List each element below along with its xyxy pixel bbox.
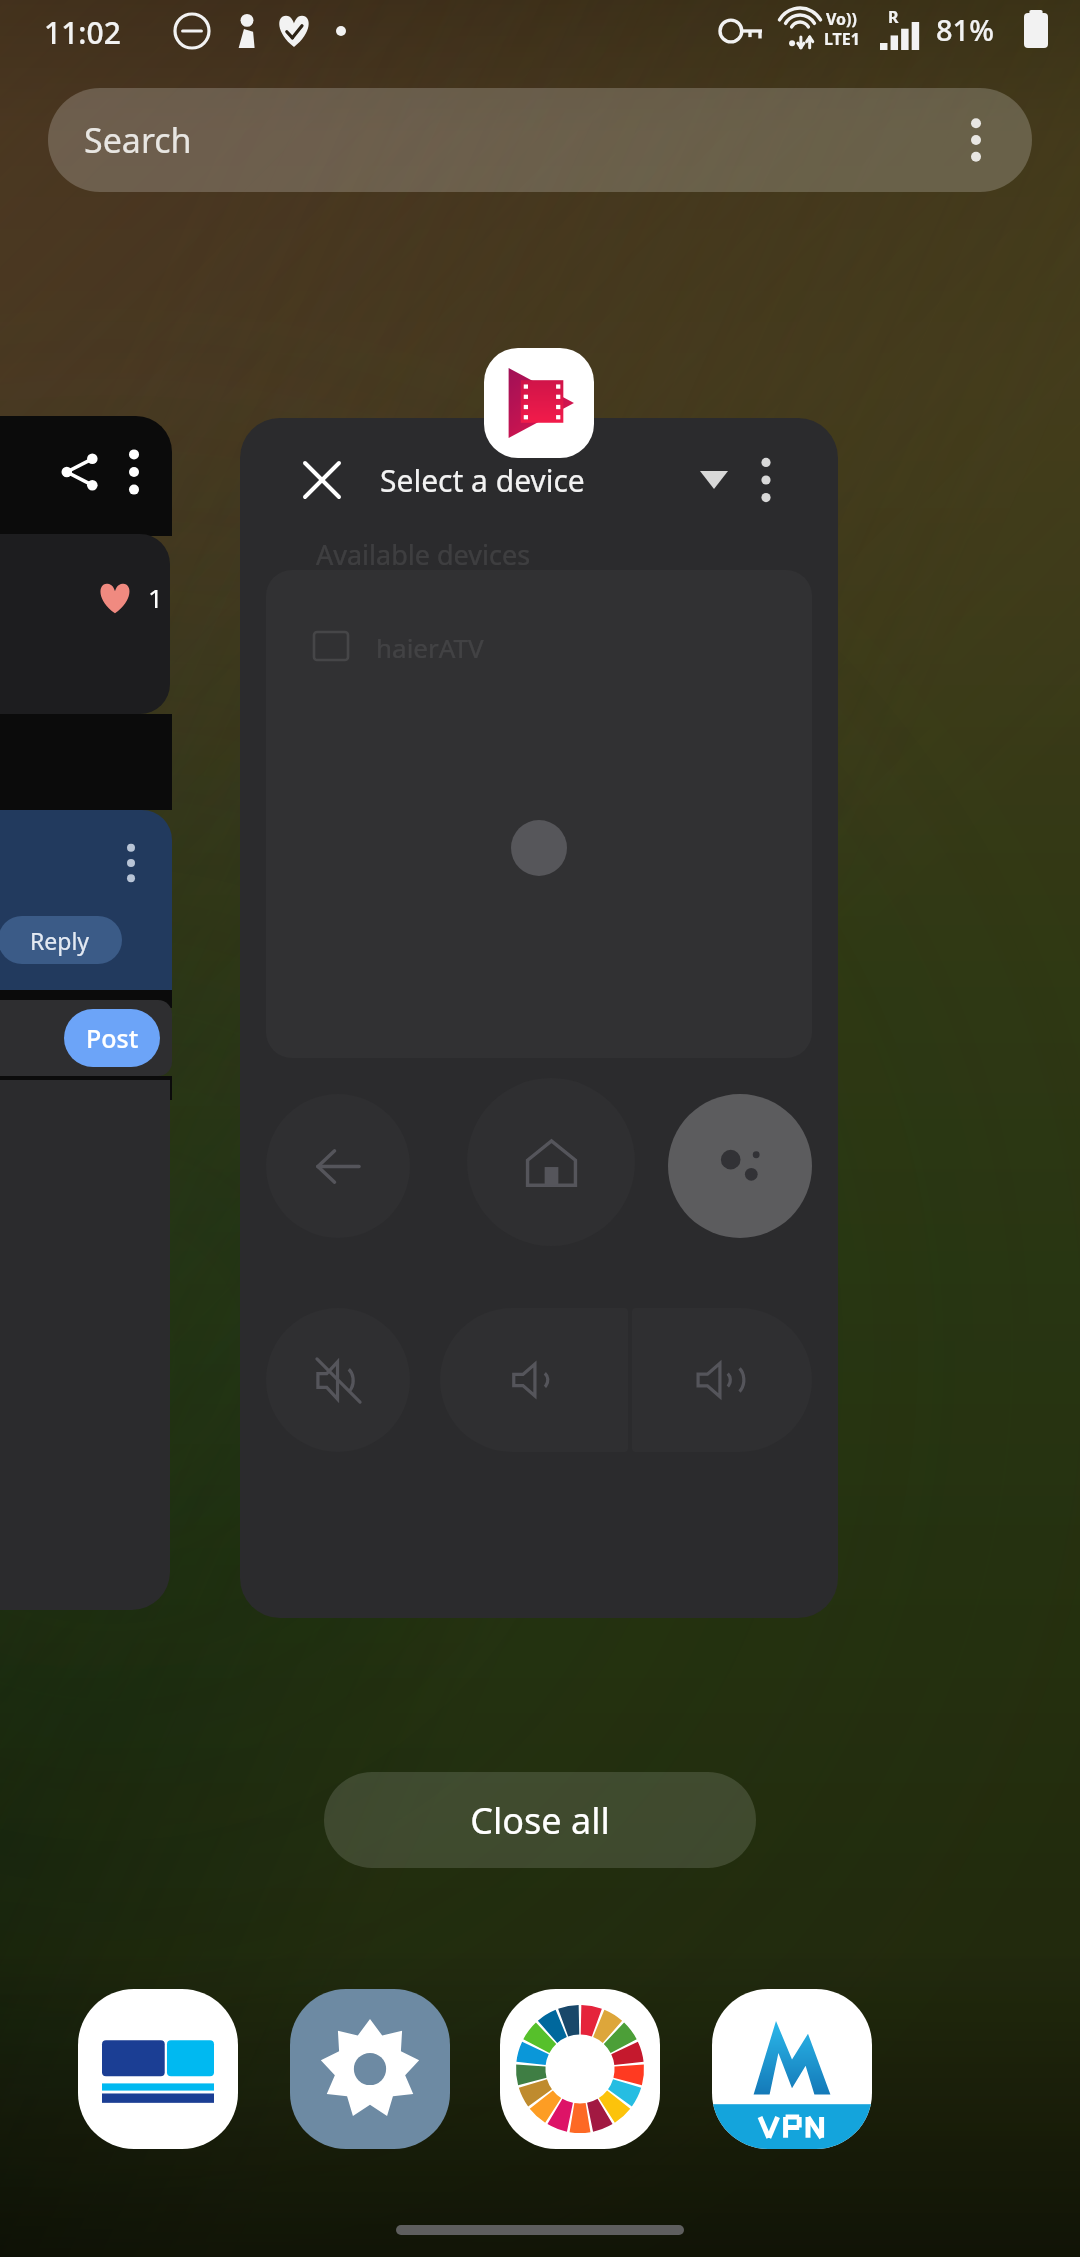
staticText: haierATV	[376, 630, 484, 665]
button[interactable]: Post	[0, 1000, 172, 1076]
button[interactable]: More options	[946, 110, 1006, 170]
button[interactable]: Mute	[266, 1308, 410, 1452]
button[interactable]: Google Play Movies	[484, 348, 594, 458]
button[interactable]: Volume down	[440, 1308, 628, 1452]
button[interactable]: Expand	[682, 448, 746, 512]
staticText: 1	[148, 580, 163, 615]
staticText: Select a device	[380, 460, 585, 501]
button[interactable]: SDG	[500, 1989, 660, 2149]
button[interactable]: Assistant	[668, 1094, 812, 1238]
button[interactable]: Close all	[324, 1772, 756, 1868]
button[interactable]: Search	[48, 88, 1032, 192]
button[interactable]: 1	[0, 534, 170, 714]
button[interactable]: Paytm	[78, 1989, 238, 2149]
staticText: Post	[86, 1021, 139, 1055]
button[interactable]: Post	[64, 1009, 160, 1067]
button[interactable]: haierATV	[266, 570, 812, 1058]
staticText: LTE1	[824, 28, 860, 50]
staticText: R	[888, 6, 899, 28]
button[interactable]: Settings	[290, 1989, 450, 2149]
staticText: Reply	[30, 925, 90, 956]
button[interactable]: Volume up	[632, 1308, 812, 1452]
button[interactable]	[0, 416, 172, 536]
button[interactable]: Back	[266, 1094, 410, 1238]
button[interactable]: VPN	[712, 1989, 872, 2149]
staticText: Available devices	[316, 536, 531, 573]
staticText: 11:02	[44, 12, 121, 53]
button[interactable]: Home	[467, 1078, 635, 1246]
staticText: 81%	[936, 10, 994, 49]
button[interactable]: Home gesture	[396, 2225, 684, 2235]
staticText: Search	[84, 117, 192, 163]
button[interactable]: Close	[292, 450, 352, 510]
staticText: Vo))	[826, 8, 857, 30]
staticText: Close all	[470, 1796, 610, 1845]
button[interactable]: More options	[734, 448, 798, 512]
button[interactable]: Reply	[0, 916, 122, 964]
button[interactable]: Close	[240, 418, 838, 1618]
button[interactable]: Reply	[0, 810, 172, 990]
